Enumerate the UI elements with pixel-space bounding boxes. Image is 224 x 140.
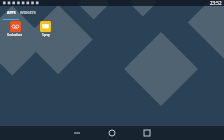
button[interactable]: WIDGETS — [19, 6, 37, 19]
button[interactable]: Home — [106, 127, 118, 139]
button[interactable]: Spray — [35, 21, 56, 43]
button[interactable]: APPS — [3, 6, 19, 19]
button[interactable]: Recents — [141, 127, 153, 139]
staticText: Grabadora — [7, 33, 23, 37]
button[interactable]: Grabadora — [4, 21, 25, 43]
staticText: 23:52 — [210, 0, 222, 6]
staticText: APPS — [7, 10, 16, 15]
staticText: WIDGETS — [20, 10, 36, 15]
staticText: Spray — [42, 33, 50, 37]
button[interactable]: Back — [71, 127, 83, 139]
